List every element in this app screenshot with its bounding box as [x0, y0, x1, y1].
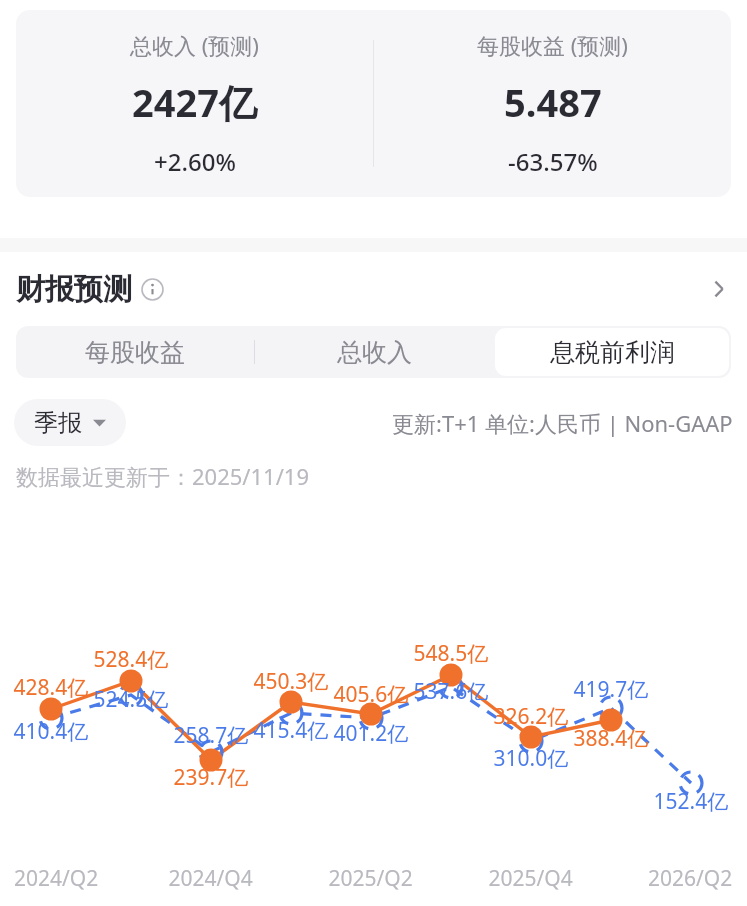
staticText: 财报预测 [16, 271, 132, 308]
other: Information [141, 278, 164, 301]
staticText: 总收入 [337, 337, 412, 368]
button[interactable]: 每股收益 (预测) [374, 10, 731, 197]
staticText: 2427亿 [132, 76, 257, 128]
button[interactable]: 季报 [14, 399, 126, 446]
staticText: 5.487 [504, 76, 602, 128]
staticText: 每股收益 (预测) [477, 30, 628, 60]
button[interactable]: 息税前利润 [495, 328, 729, 376]
button[interactable]: 财报预测 [0, 252, 747, 326]
staticText: 息税前利润 [550, 337, 675, 368]
staticText: -63.57% [508, 145, 598, 178]
other: More [705, 276, 731, 302]
staticText: +2.60% [154, 145, 236, 178]
staticText: 季报 [34, 408, 82, 438]
staticText: 每股收益 [85, 337, 185, 368]
button[interactable]: 总收入 [257, 328, 491, 376]
staticText: 总收入 (预测) [130, 30, 259, 60]
staticText: 数据最近更新于：2025/11/19 [16, 461, 310, 491]
button[interactable]: 每股收益 [18, 328, 252, 376]
button[interactable]: 总收入 (预测) [16, 10, 373, 197]
staticText: 更新:T+1 单位:人民币 | Non-GAAP [392, 408, 733, 438]
